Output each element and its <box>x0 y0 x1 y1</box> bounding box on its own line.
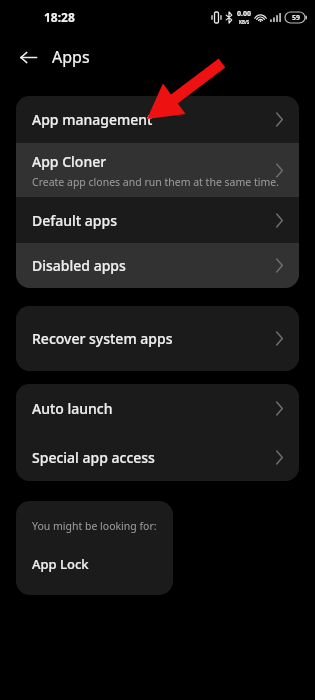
staticText: Apps <box>52 46 90 68</box>
staticText: Create app clones and run them at the sa… <box>32 175 279 189</box>
button[interactable]: Recover system apps <box>16 306 299 371</box>
staticText: Recover system apps <box>32 329 173 348</box>
staticText: KB/S <box>239 19 250 25</box>
button[interactable]: You might be looking for: <box>16 501 173 595</box>
staticText: Auto launch <box>32 399 113 418</box>
staticText: 59 <box>292 13 301 23</box>
staticText: Default apps <box>32 211 118 230</box>
button[interactable]: Disabled apps <box>16 243 299 288</box>
button[interactable]: Default apps <box>16 197 299 243</box>
staticText: App Lock <box>32 555 89 573</box>
button[interactable]: Auto launch <box>16 384 299 433</box>
staticText: Special app access <box>32 448 155 467</box>
button[interactable]: App Cloner <box>16 143 299 197</box>
button[interactable]: Special app access <box>16 433 299 481</box>
staticText: App management <box>32 110 153 129</box>
staticText: Disabled apps <box>32 256 126 275</box>
staticText: 18:28 <box>44 9 75 25</box>
staticText: You might be looking for: <box>32 519 157 533</box>
staticText: App Cloner <box>32 152 107 171</box>
staticText: 0.00 <box>237 9 251 19</box>
button[interactable]: App management <box>16 96 299 143</box>
button[interactable]: Back <box>10 39 46 75</box>
